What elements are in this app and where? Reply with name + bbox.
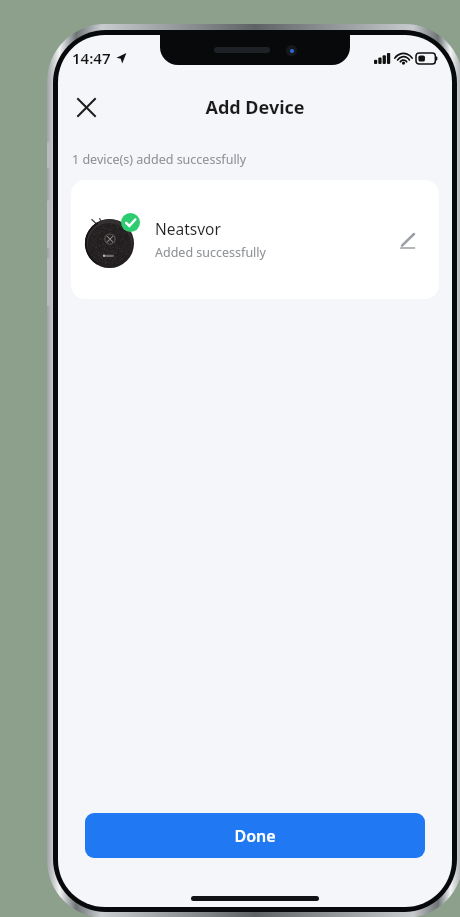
staticText: Add Device: [205, 95, 305, 120]
button[interactable]: Neatsvor: [71, 180, 439, 299]
button[interactable]: Rename device: [389, 222, 425, 258]
staticText: 1 device(s) added successfully: [72, 151, 247, 168]
staticText: Added successfully: [155, 244, 266, 261]
staticText: Neatsvor: [155, 218, 221, 239]
button[interactable]: Close: [64, 85, 108, 129]
button[interactable]: Done: [85, 813, 425, 858]
staticText: 14:47: [72, 48, 111, 68]
staticText: Done: [234, 825, 276, 847]
